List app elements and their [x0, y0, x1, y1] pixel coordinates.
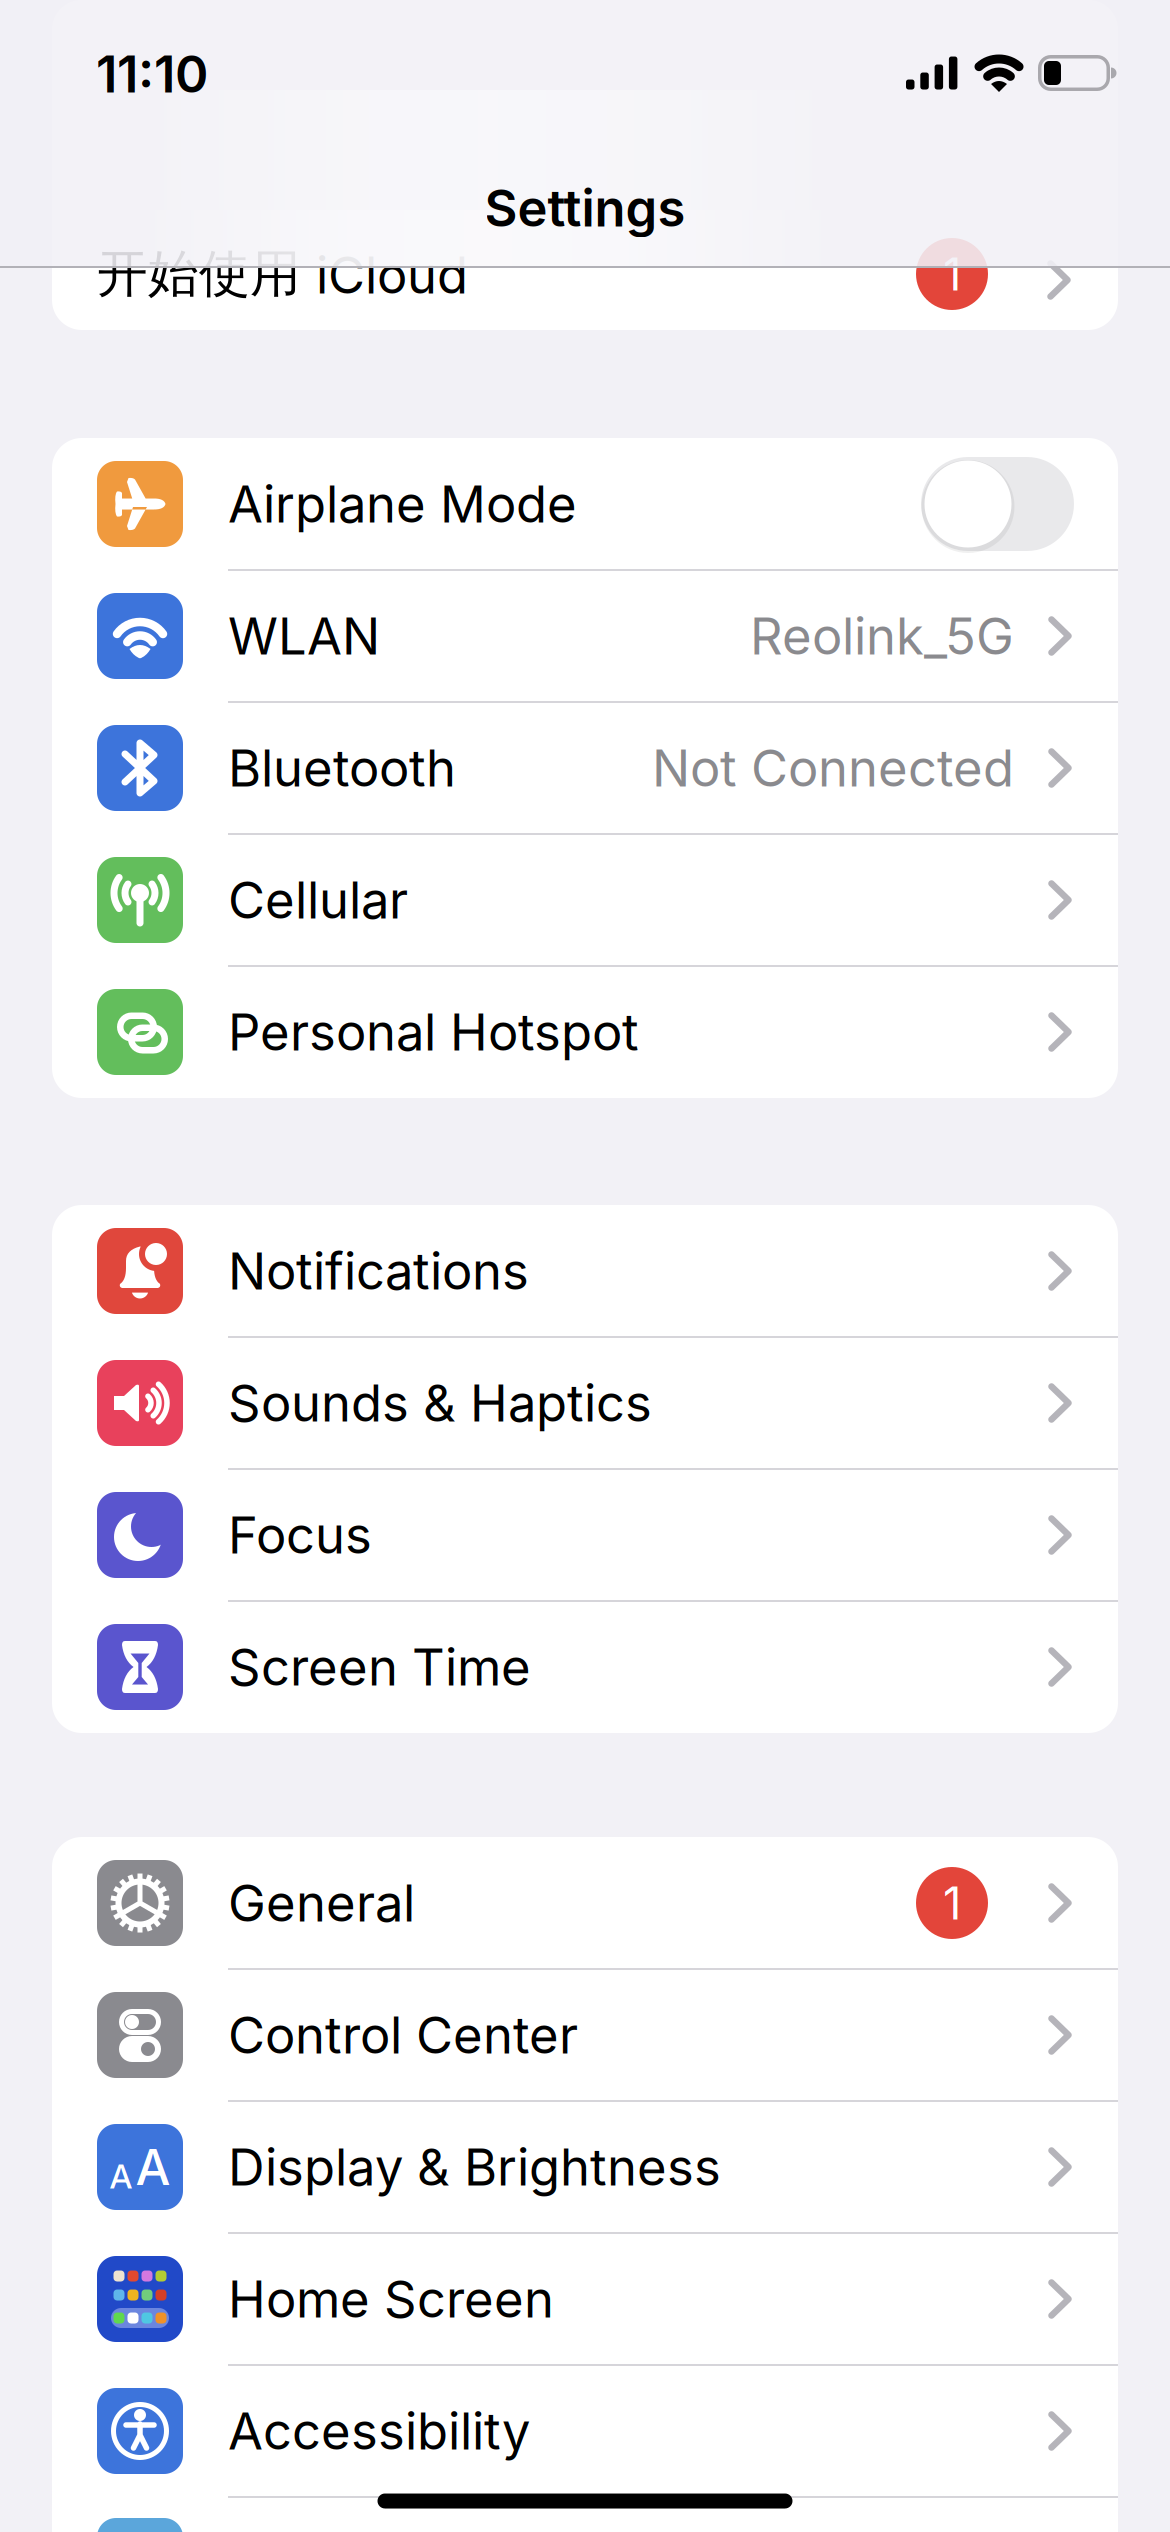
staticText: Cellular	[228, 870, 408, 930]
button[interactable]: Cellular	[52, 834, 1118, 966]
button[interactable]: Personal Hotspot	[52, 966, 1118, 1098]
button[interactable]: Bluetooth	[52, 702, 1118, 834]
staticText: Bluetooth	[228, 738, 456, 798]
staticText: Reolink_5G	[750, 606, 1014, 666]
staticText: Display & Brightness	[228, 2137, 721, 2197]
staticText: Not Connected	[652, 738, 1014, 798]
staticText: Home Screen	[228, 2269, 554, 2329]
staticText: Airplane Mode	[228, 474, 577, 534]
staticText: 1	[943, 247, 961, 301]
button[interactable]: WLAN	[52, 570, 1118, 702]
staticText: WLAN	[228, 606, 380, 666]
staticText: Notifications	[228, 1241, 529, 1301]
button[interactable]: Screen Time	[52, 1601, 1118, 1733]
staticText: A	[135, 2138, 170, 2196]
staticText: Sounds & Haptics	[228, 1373, 652, 1433]
button[interactable]: Notifications	[52, 1205, 1118, 1337]
button[interactable]: A	[52, 2101, 1118, 2233]
button[interactable]: Airplane Mode	[921, 457, 1074, 551]
button[interactable]: Focus	[52, 1469, 1118, 1601]
staticText: 11:10	[96, 44, 208, 104]
button[interactable]: General	[52, 1837, 1118, 1969]
staticText: General	[228, 1873, 415, 1933]
staticText: Control Center	[228, 2005, 578, 2065]
staticText: Screen Time	[228, 1637, 531, 1697]
button[interactable]: Accessibility	[52, 2365, 1118, 2497]
staticText: 开始使用 iCloud	[97, 243, 468, 305]
staticText: Focus	[228, 1505, 372, 1565]
staticText: 1	[943, 1876, 961, 1930]
button[interactable]: 开始使用 iCloud	[52, 160, 1118, 330]
staticText: Accessibility	[228, 2401, 530, 2461]
staticText: Personal Hotspot	[228, 1002, 639, 1062]
staticText: A	[109, 2157, 132, 2196]
button[interactable]: Sounds & Haptics	[52, 1337, 1118, 1469]
button[interactable]: Control Center	[52, 1969, 1118, 2101]
staticText: Settings	[484, 178, 685, 238]
button[interactable]: Home Screen	[52, 2233, 1118, 2365]
